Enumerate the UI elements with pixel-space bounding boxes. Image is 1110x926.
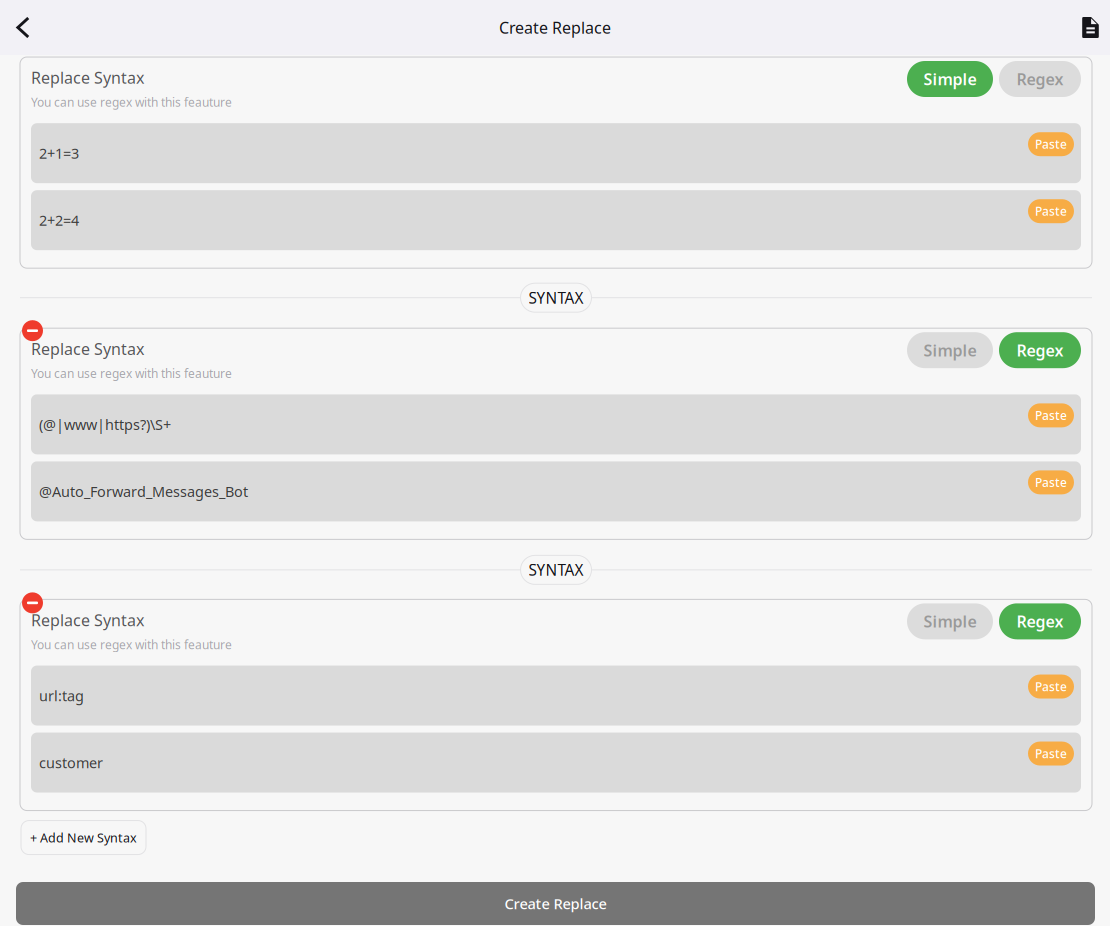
button[interactable]: Create Replace	[16, 882, 1095, 925]
staticText: + Add New Syntax	[30, 829, 137, 846]
staticText: You can use regex with this feauture	[31, 94, 232, 110]
staticText: 2+1=3	[39, 143, 79, 163]
button[interactable]: Documentation	[1071, 4, 1110, 50]
button[interactable]: Simple	[907, 603, 993, 639]
staticText: You can use regex with this feauture	[31, 365, 232, 381]
staticText: Regex	[1016, 340, 1063, 361]
button[interactable]: Paste	[1028, 199, 1074, 223]
staticText: (@|www|https?)\S+	[39, 415, 171, 434]
button[interactable]: Paste	[1028, 675, 1074, 699]
button[interactable]: url:tag	[31, 666, 1081, 726]
staticText: Create Replace	[504, 894, 606, 913]
staticText: Replace Syntax	[31, 609, 144, 631]
button[interactable]: Remove syntax	[22, 320, 43, 341]
staticText: Paste	[1035, 203, 1067, 219]
button[interactable]: Back	[1, 4, 45, 50]
button[interactable]: Regex	[999, 61, 1081, 97]
button[interactable]: Regex	[999, 332, 1081, 368]
button[interactable]: Paste	[1028, 403, 1074, 427]
button[interactable]: Remove syntax	[22, 592, 43, 613]
staticText: Paste	[1035, 136, 1067, 152]
staticText: Create Replace	[499, 17, 611, 38]
button[interactable]: customer	[31, 733, 1081, 793]
staticText: Paste	[1035, 746, 1067, 761]
button[interactable]: Paste	[1028, 132, 1074, 156]
staticText: Paste	[1035, 407, 1067, 423]
button[interactable]: Paste	[1028, 742, 1074, 766]
staticText: customer	[39, 753, 103, 772]
button[interactable]: (@|www|https?)\S+	[31, 394, 1081, 454]
staticText: Simple	[923, 340, 976, 361]
button[interactable]: Simple	[907, 332, 993, 368]
staticText: You can use regex with this feauture	[31, 637, 232, 652]
staticText: SYNTAX	[528, 287, 583, 308]
staticText: @Auto_Forward_Messages_Bot	[39, 482, 248, 501]
staticText: SYNTAX	[528, 559, 583, 580]
button[interactable]: Simple	[907, 61, 993, 97]
staticText: 2+2=4	[39, 210, 79, 230]
staticText: Replace Syntax	[31, 338, 144, 359]
button[interactable]: @Auto_Forward_Messages_Bot	[31, 461, 1081, 521]
button[interactable]: Regex	[999, 603, 1081, 639]
button[interactable]: + Add New Syntax	[21, 821, 146, 855]
staticText: Paste	[1035, 474, 1067, 490]
staticText: Regex	[1016, 68, 1063, 90]
staticText: Regex	[1016, 611, 1063, 632]
staticText: Replace Syntax	[31, 67, 144, 88]
staticText: Paste	[1035, 679, 1067, 694]
button[interactable]: Paste	[1028, 470, 1074, 494]
staticText: Simple	[923, 68, 976, 90]
staticText: url:tag	[39, 686, 84, 705]
button[interactable]: 2+2=4	[31, 190, 1081, 250]
button[interactable]: 2+1=3	[31, 123, 1081, 183]
staticText: Simple	[923, 611, 976, 632]
